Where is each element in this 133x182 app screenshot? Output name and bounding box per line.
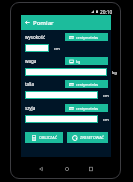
button[interactable]: centymetrów (65, 104, 108, 112)
staticText: cm (103, 93, 109, 98)
button[interactable]: centymetrów (65, 33, 108, 41)
staticText: talia (25, 81, 34, 87)
staticText: Pomiar (33, 19, 54, 27)
staticText: OBLICZAĆ (39, 135, 58, 140)
button[interactable]: centymetrów (65, 80, 108, 88)
staticText: 20:10 (100, 9, 113, 14)
staticText: waga (25, 58, 37, 64)
button[interactable]: ZRESETOWAĆ (67, 132, 108, 143)
button[interactable]: Home (60, 162, 74, 176)
button[interactable]: Back (21, 15, 33, 30)
staticText: cm (103, 117, 109, 122)
staticText: centymetrów (76, 106, 99, 111)
button[interactable]: kg (65, 57, 108, 65)
button[interactable] (25, 44, 49, 52)
staticText: centymetrów (76, 82, 99, 87)
button[interactable] (25, 115, 98, 123)
button[interactable]: OBLICZAĆ (25, 132, 63, 143)
staticText: kg (112, 70, 117, 75)
staticText: centymetrów (76, 35, 99, 40)
button[interactable]: Back (34, 162, 48, 176)
staticText: szyja (25, 105, 36, 111)
button[interactable] (25, 68, 107, 76)
button[interactable]: Recent apps (84, 162, 98, 176)
staticText: kg (76, 59, 81, 64)
staticText: wysokość (25, 34, 46, 40)
staticText: ZRESETOWAĆ (80, 135, 104, 140)
staticText: cm (54, 46, 60, 51)
button[interactable] (25, 91, 98, 99)
